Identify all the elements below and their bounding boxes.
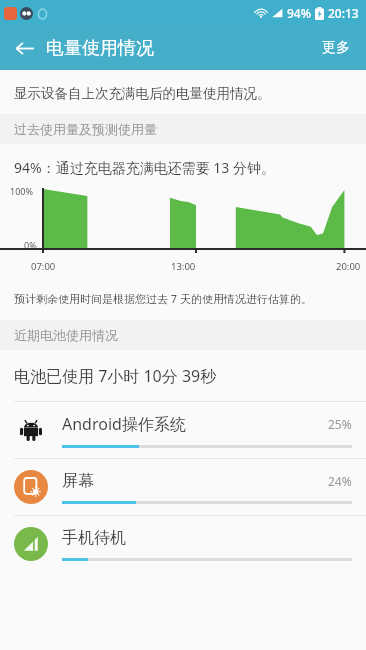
button[interactable]: Android操作系统: [0, 402, 366, 458]
staticText: 电池已使用 7小时 10分 39秒: [14, 365, 217, 387]
staticText: 25%: [328, 416, 352, 432]
staticText: 20:13: [328, 5, 359, 21]
staticText: 07:00: [31, 260, 56, 273]
staticText: 电量使用情况: [46, 37, 154, 60]
staticText: 13:00: [171, 260, 196, 273]
staticText: 100%: [10, 185, 33, 197]
button[interactable]: 手机待机: [0, 516, 366, 572]
button[interactable]: 屏幕: [0, 459, 366, 515]
staticText: 更多: [322, 39, 350, 57]
staticText: 预计剩余使用时间是根据您过去 7 天的使用情况进行估算的。: [14, 291, 313, 306]
staticText: Android操作系统: [62, 413, 186, 435]
staticText: 显示设备自上次充满电后的电量使用情况。: [14, 85, 271, 102]
staticText: 20:00: [336, 260, 361, 273]
staticText: 0%: [24, 239, 37, 251]
button[interactable]: 更多: [314, 31, 358, 65]
staticText: 94%：通过充电器充满电还需要 13 分钟。: [14, 158, 275, 177]
staticText: 手机待机: [62, 528, 126, 548]
staticText: 24%: [328, 473, 352, 489]
staticText: 94%: [287, 5, 311, 21]
staticText: 屏幕: [62, 471, 94, 491]
staticText: 过去使用量及预测使用量: [14, 121, 157, 137]
button[interactable]: Back: [6, 30, 42, 66]
staticText: 近期电池使用情况: [14, 327, 118, 343]
